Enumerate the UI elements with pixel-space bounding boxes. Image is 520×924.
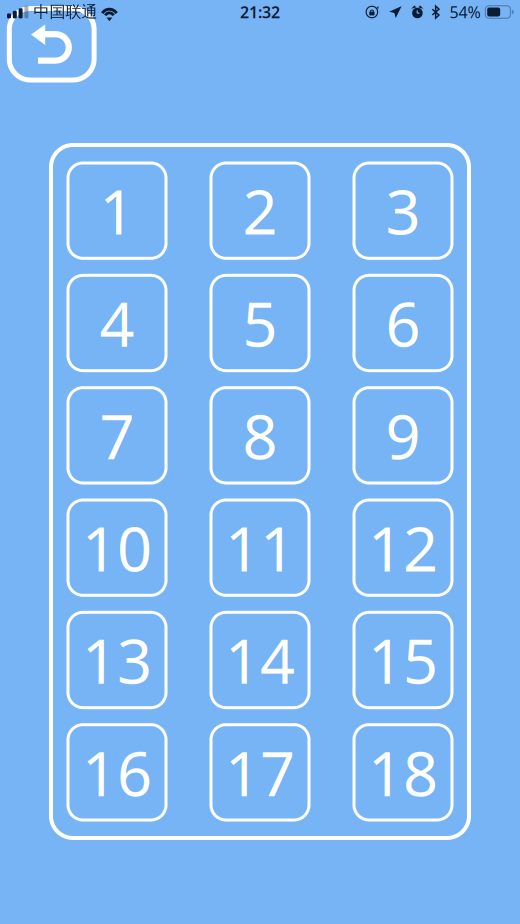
- button[interactable]: 18: [354, 725, 452, 820]
- button[interactable]: 5: [211, 275, 309, 371]
- staticText: 2: [242, 170, 277, 251]
- button[interactable]: 16: [68, 725, 166, 820]
- staticText: 7: [99, 395, 134, 476]
- staticText: 16: [82, 732, 152, 813]
- button[interactable]: 15: [354, 612, 452, 708]
- button[interactable]: 17: [211, 725, 309, 820]
- button[interactable]: 7: [68, 388, 166, 483]
- staticText: 18: [368, 732, 438, 813]
- staticText: 5: [242, 282, 277, 364]
- button[interactable]: 12: [354, 500, 452, 595]
- staticText: 9: [385, 395, 420, 476]
- staticText: 17: [225, 732, 295, 813]
- staticText: 13: [82, 619, 152, 701]
- button[interactable]: 6: [354, 275, 452, 371]
- staticText: 6: [385, 282, 420, 364]
- staticText: 15: [368, 619, 438, 701]
- staticText: 12: [368, 507, 438, 588]
- button[interactable]: 1: [68, 163, 166, 258]
- staticText: 8: [242, 395, 277, 476]
- staticText: 1: [99, 170, 134, 251]
- staticText: 中国联通: [33, 2, 97, 22]
- staticText: 4: [99, 282, 134, 364]
- button[interactable]: 14: [211, 612, 309, 708]
- button[interactable]: 4: [68, 275, 166, 371]
- staticText: 14: [225, 619, 295, 701]
- staticText: 10: [82, 507, 152, 588]
- button[interactable]: 8: [211, 388, 309, 483]
- button[interactable]: 9: [354, 388, 452, 483]
- staticText: 3: [385, 170, 420, 251]
- staticText: 21:32: [240, 1, 280, 23]
- button[interactable]: 3: [354, 163, 452, 258]
- button[interactable]: 2: [211, 163, 309, 258]
- button[interactable]: 10: [68, 500, 166, 595]
- button[interactable]: 13: [68, 612, 166, 708]
- button[interactable]: Back: [0, 0, 104, 96]
- staticText: 11: [225, 507, 295, 588]
- staticText: 54%: [449, 1, 480, 23]
- button[interactable]: 11: [211, 500, 309, 595]
